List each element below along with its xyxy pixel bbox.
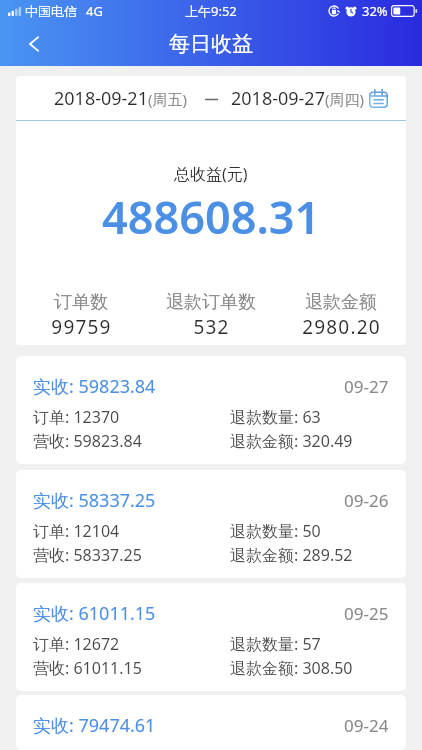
staticText: 09-24 <box>344 714 389 737</box>
staticText: 退款订单数 <box>166 291 256 314</box>
staticText: 488608.31 <box>102 186 321 247</box>
staticText: 实收: 59823.84 <box>33 374 156 399</box>
staticText: (周五) <box>148 89 188 109</box>
button[interactable]: 实收: 59823.84 <box>16 356 406 464</box>
staticText: 营收: 58337.25 <box>33 544 230 566</box>
staticText: 退款金额: 320.49 <box>230 430 353 452</box>
staticText: 2018-09-21 <box>54 86 148 111</box>
staticText: 09-27 <box>344 375 389 398</box>
staticText: 99759 <box>51 314 112 340</box>
staticText: 实收: 79474.61 <box>33 713 156 738</box>
staticText: 退款金额 <box>305 291 377 314</box>
button[interactable]: Select date range <box>369 89 388 108</box>
staticText: 订单: 12672 <box>33 633 230 655</box>
staticText: 订单数 <box>54 291 108 314</box>
staticText: 总收益(元) <box>174 163 248 185</box>
staticText: 2018-09-27 <box>231 86 325 111</box>
staticText: 退款金额: 308.50 <box>230 657 353 679</box>
staticText: (周四) <box>325 89 365 109</box>
staticText: 32% <box>362 2 388 20</box>
staticText: 订单: 12370 <box>33 406 230 428</box>
button[interactable]: 实收: 79474.61 <box>16 695 406 750</box>
staticText: 退款数量: 57 <box>230 633 321 655</box>
staticText: 营收: 61011.15 <box>33 657 230 679</box>
staticText: 退款数量: 50 <box>230 520 321 542</box>
staticText: 退款金额: 289.52 <box>230 544 353 566</box>
button[interactable]: Back <box>12 22 56 66</box>
staticText: 退款数量: 63 <box>230 406 321 428</box>
staticText: 上午9:52 <box>185 2 237 20</box>
staticText: 实收: 58337.25 <box>33 488 156 513</box>
button[interactable]: 2018-09-21 <box>16 76 406 120</box>
staticText: 订单: 12104 <box>33 520 230 542</box>
staticText: 每日收益 <box>0 31 422 57</box>
staticText: 532 <box>193 314 230 340</box>
staticText: 09-26 <box>344 489 389 512</box>
staticText: 4G <box>86 2 103 20</box>
button[interactable]: 实收: 61011.15 <box>16 583 406 691</box>
staticText: 营收: 59823.84 <box>33 430 230 452</box>
staticText: 09-25 <box>344 602 389 625</box>
staticText: 实收: 61011.15 <box>33 601 156 626</box>
staticText: 2980.20 <box>302 314 381 340</box>
staticText: 中国电信 <box>25 3 77 19</box>
button[interactable]: 实收: 58337.25 <box>16 470 406 578</box>
